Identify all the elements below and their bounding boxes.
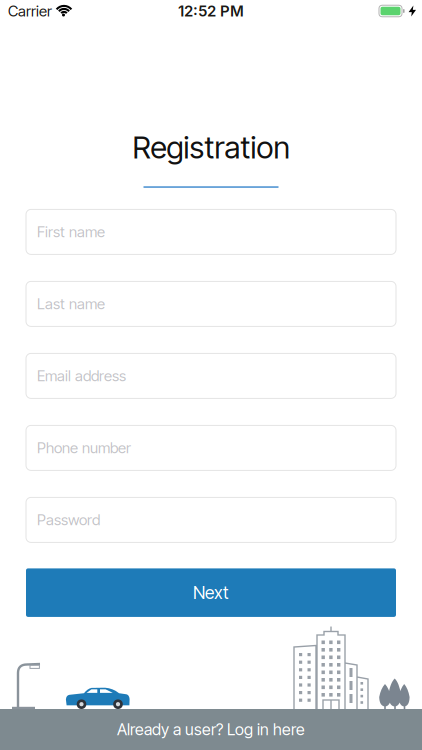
staticText: Already a user? Log in here bbox=[117, 720, 305, 739]
staticText: Email address bbox=[37, 367, 126, 385]
staticText: 12:52 PM bbox=[178, 2, 244, 20]
staticText: Carrier bbox=[8, 2, 52, 20]
button[interactable]: Already a user? Log in here bbox=[0, 709, 422, 750]
staticText: Next bbox=[193, 582, 229, 603]
staticText: Password bbox=[37, 511, 100, 529]
button[interactable]: Next bbox=[26, 568, 396, 617]
staticText: First name bbox=[37, 223, 105, 241]
staticText: Registration bbox=[132, 129, 289, 166]
button[interactable]: First name bbox=[26, 209, 396, 254]
staticText: Phone number bbox=[37, 439, 131, 457]
button[interactable]: Password bbox=[26, 497, 396, 542]
staticText: Last name bbox=[37, 295, 105, 313]
button[interactable]: Email address bbox=[26, 353, 396, 398]
button[interactable]: Phone number bbox=[26, 425, 396, 470]
button[interactable]: Last name bbox=[26, 281, 396, 326]
